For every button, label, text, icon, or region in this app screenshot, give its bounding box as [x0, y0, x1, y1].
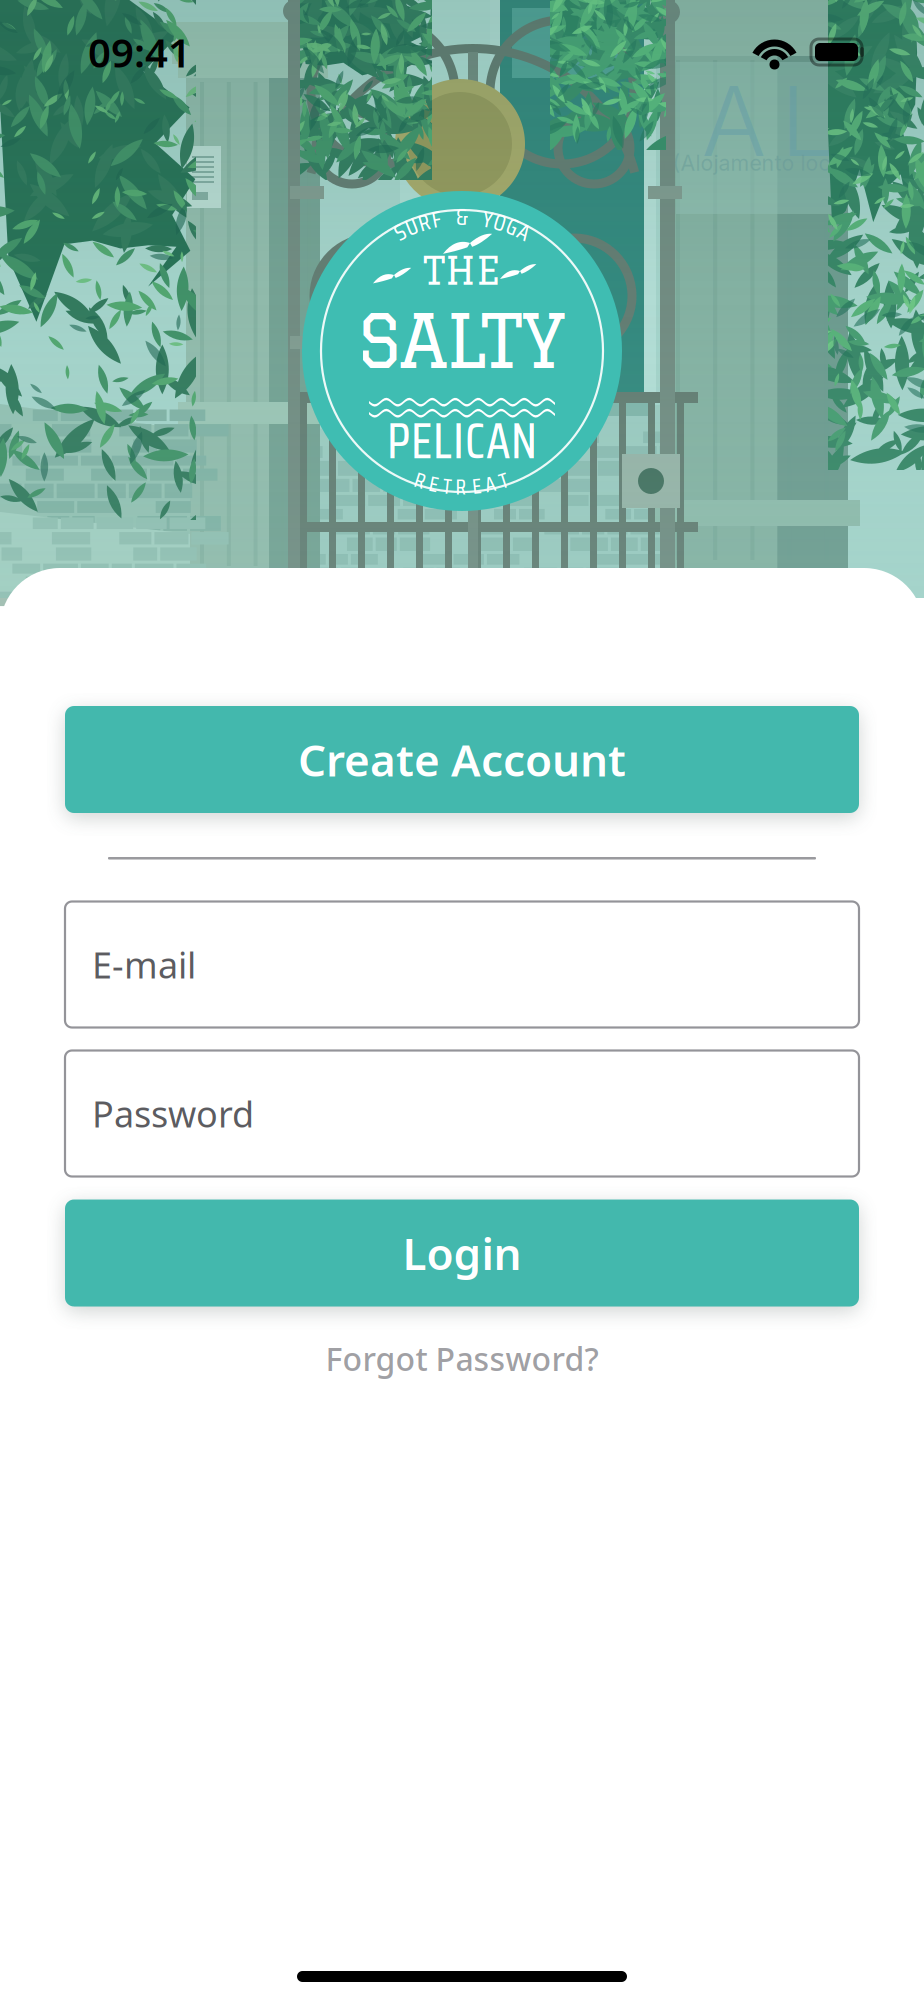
staticText: & — [456, 199, 468, 235]
staticText: T — [499, 464, 508, 497]
staticText — [473, 200, 477, 235]
button[interactable]: Login — [65, 1199, 859, 1306]
staticText: U — [406, 209, 418, 245]
staticText: Y — [483, 202, 493, 237]
staticText: 09:41 — [88, 25, 191, 78]
staticText: E-mail — [92, 941, 196, 988]
staticText: T — [443, 469, 452, 503]
staticText: A — [485, 467, 496, 501]
button[interactable]: Create Account — [65, 706, 859, 813]
staticText: AL — [701, 63, 834, 179]
staticText: PELICAN — [387, 402, 537, 480]
staticText: Password — [92, 1090, 254, 1137]
staticText: R — [415, 464, 426, 497]
staticText: F — [432, 202, 441, 237]
staticText: R — [456, 470, 467, 504]
button[interactable]: E-mail — [65, 901, 859, 1027]
staticText: G — [507, 209, 518, 245]
button[interactable]: Forgot Password? — [65, 1330, 859, 1386]
staticText: S — [395, 214, 405, 250]
staticText: E — [472, 469, 481, 503]
staticText: Forgot Password? — [325, 1337, 598, 1380]
staticText: R — [418, 205, 429, 240]
staticText: E — [429, 467, 438, 501]
staticText: Create Account — [298, 730, 626, 789]
staticText: Login — [402, 1224, 521, 1282]
staticText: A — [518, 214, 529, 250]
staticText: SALTY — [357, 298, 566, 382]
staticText: O — [494, 205, 506, 240]
staticText: (Alojamento local) — [672, 150, 855, 176]
staticText: THE — [423, 248, 501, 292]
staticText — [447, 200, 451, 235]
button[interactable]: Password — [65, 1050, 859, 1176]
